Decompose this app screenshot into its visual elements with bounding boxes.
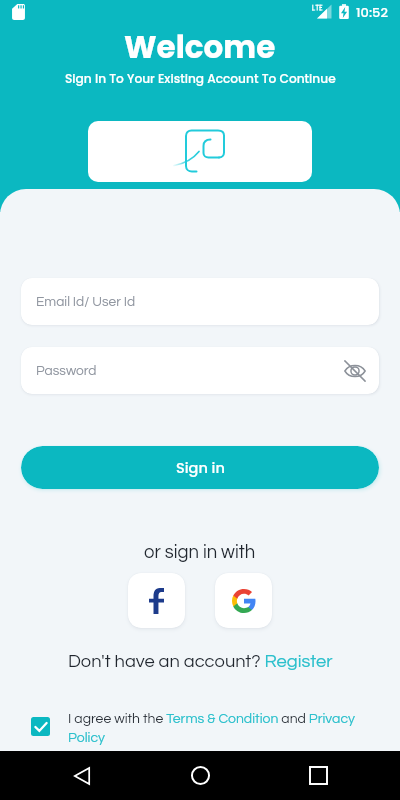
button[interactable]: Don't have an account? Register [68,652,333,671]
staticText: Password [36,364,97,378]
button[interactable]: Back [58,751,106,800]
button[interactable]: Recent apps [294,751,342,800]
staticText: I agree with the Terms & Condition and P… [68,712,360,745]
button[interactable]: Email Id/ User Id [21,278,379,325]
button[interactable]: Home [176,751,224,800]
staticText: Sign In To Your Existing Account To Cont… [65,70,336,87]
staticText: Sign in [176,458,225,478]
staticText: Welcome [124,25,276,68]
staticText: or sign in with [144,543,256,562]
staticText: 10:52 [356,3,388,21]
staticText: Email Id/ User Id [36,295,136,309]
button[interactable]: Toggle password visibility [339,355,371,387]
button[interactable]: Sign in with Facebook [128,573,185,628]
button[interactable]: I agree checkbox [31,717,50,736]
button[interactable]: Password [21,347,379,394]
button[interactable]: Sign in with Google [215,573,272,628]
button[interactable]: Sign in [21,446,379,489]
staticText: Don't have an account? Register [68,652,333,671]
